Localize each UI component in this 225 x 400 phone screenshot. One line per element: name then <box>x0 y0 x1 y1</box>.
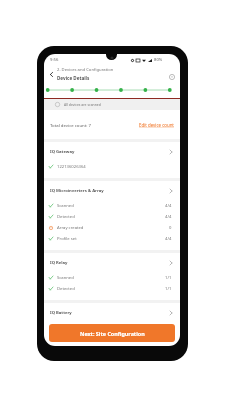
staticText: Detected <box>57 214 75 220</box>
staticText: 80% <box>154 57 163 63</box>
staticText: 1/1 <box>165 275 172 281</box>
staticText: Device Details <box>57 75 90 81</box>
staticText: 2. Devices and Configuration <box>57 67 114 73</box>
staticText: Scanned <box>57 203 74 209</box>
staticText: 4/4 <box>165 236 172 242</box>
button[interactable]: IQ Microinverters & Array <box>44 181 180 200</box>
button[interactable]: Help <box>167 72 176 81</box>
button[interactable]: IQ Relay <box>44 253 180 272</box>
staticText: IQ Microinverters & Array <box>50 188 104 194</box>
staticText: 1/1 <box>165 286 172 292</box>
staticText: 4/4 <box>165 214 172 220</box>
staticText: Array created <box>57 225 84 231</box>
staticText: Edit device count <box>139 122 174 128</box>
button[interactable]: Next: Site Configuration <box>49 324 175 342</box>
staticText: Profile set <box>57 236 77 242</box>
staticText: 0 <box>169 225 172 231</box>
button[interactable]: Back <box>46 69 57 80</box>
staticText: Scanned <box>57 275 74 281</box>
staticText: Detected <box>57 286 75 292</box>
staticText: IQ Battery <box>50 310 72 316</box>
staticText: IQ Relay <box>50 260 68 266</box>
staticText: 4/4 <box>165 203 172 209</box>
button[interactable]: Edit device count <box>139 122 174 128</box>
staticText: 122136026364 <box>57 164 86 170</box>
staticText: All devices are scanned <box>64 102 101 107</box>
button[interactable]: IQ Battery <box>44 303 180 322</box>
staticText: IQ Gateway <box>50 149 75 155</box>
button[interactable]: IQ Gateway <box>44 142 180 161</box>
staticText: Total device count: 7 <box>50 122 91 128</box>
staticText: 9:56 <box>50 57 59 63</box>
staticText: Next: Site Configuration <box>80 330 145 337</box>
